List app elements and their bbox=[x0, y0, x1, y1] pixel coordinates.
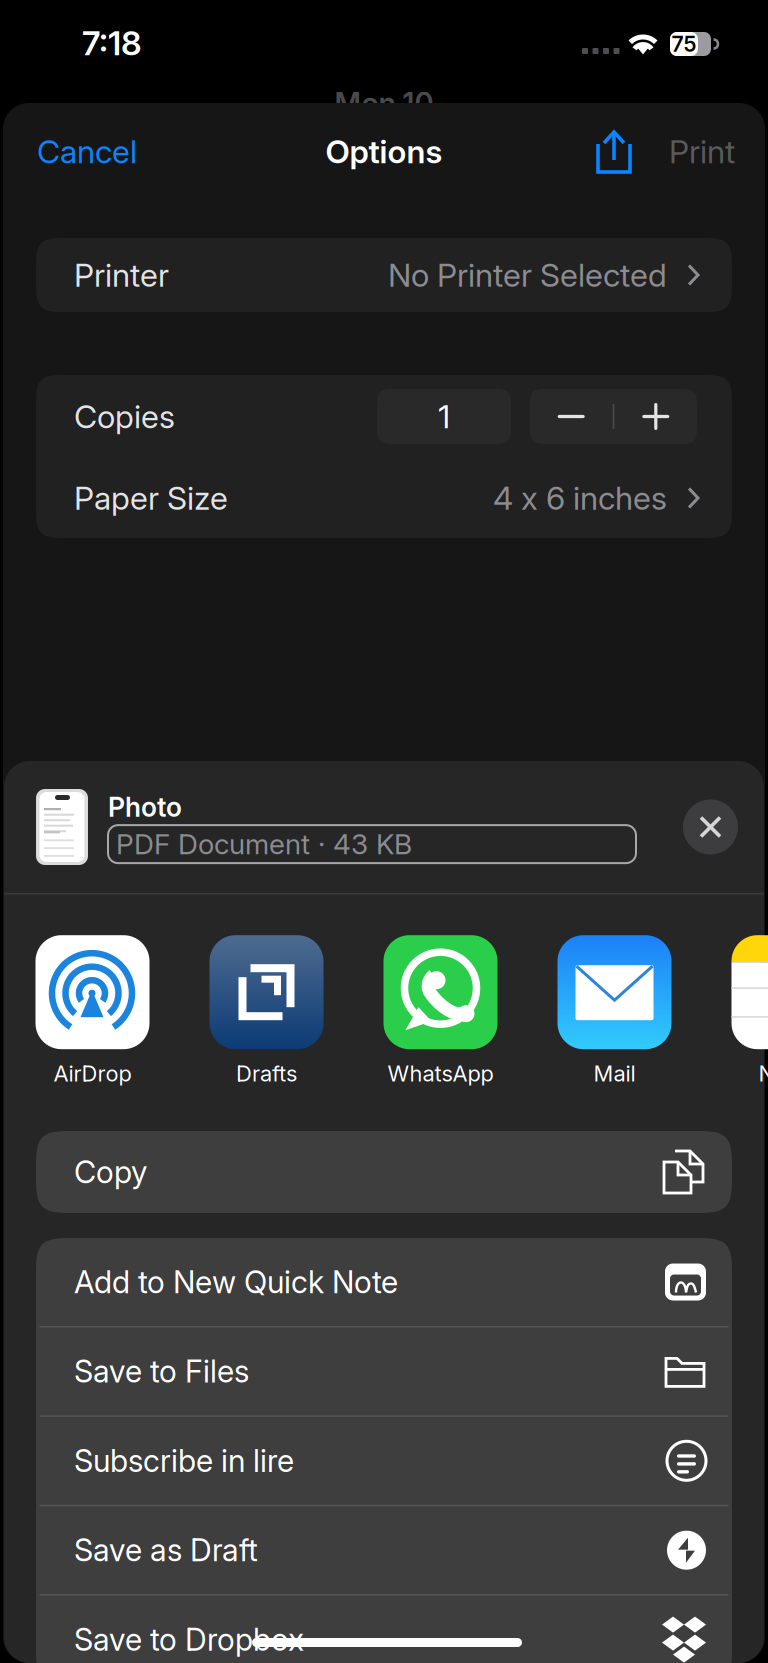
button[interactable]: Copy bbox=[36, 1128, 732, 1216]
button[interactable]: AirDrop bbox=[5, 931, 179, 1091]
button[interactable]: Save to Files bbox=[36, 1327, 732, 1415]
staticText: Cancel bbox=[37, 132, 137, 171]
staticText: Mail bbox=[593, 1060, 635, 1087]
button[interactable]: Printer bbox=[36, 238, 732, 312]
staticText: AirDrop bbox=[53, 1060, 131, 1087]
staticText: 4 ​x​ 6 inches bbox=[493, 479, 667, 517]
button[interactable]: Paper Size bbox=[36, 458, 732, 538]
staticText: 1 bbox=[438, 397, 450, 436]
button[interactable]: Save to Dropbox bbox=[36, 1596, 732, 1663]
button[interactable]: Increase copies bbox=[614, 389, 697, 444]
button[interactable]: WhatsApp bbox=[353, 931, 527, 1091]
staticText: No Printer Selected bbox=[388, 256, 667, 294]
staticText: Add to New Quick Note bbox=[74, 1263, 398, 1300]
button[interactable]: Share bbox=[596, 129, 632, 174]
staticText: Paper Size bbox=[74, 479, 228, 517]
button[interactable]: Save as Draft bbox=[36, 1506, 732, 1594]
staticText: Subscribe in lire bbox=[74, 1442, 294, 1479]
staticText: WhatsApp bbox=[387, 1060, 493, 1087]
staticText: Save to Dropbox bbox=[74, 1621, 304, 1658]
button[interactable]: Decrease copies bbox=[530, 389, 613, 444]
staticText: Save to Files bbox=[74, 1353, 249, 1390]
staticText: Drafts bbox=[236, 1060, 297, 1087]
staticText: Copy bbox=[74, 1153, 147, 1190]
staticText: PDF Document · 43 KB bbox=[116, 827, 412, 861]
staticText: Print bbox=[669, 132, 735, 171]
staticText: 7:18 bbox=[82, 23, 142, 63]
button[interactable]: Add to New Quick Note bbox=[36, 1238, 732, 1326]
button[interactable]: Notes bbox=[701, 931, 768, 1091]
button[interactable]: Subscribe in lire bbox=[36, 1417, 732, 1505]
staticText: Printer bbox=[74, 256, 169, 294]
staticText: Options bbox=[325, 132, 442, 171]
button[interactable]: Mail bbox=[527, 931, 701, 1091]
staticText: Notes bbox=[758, 1060, 768, 1087]
staticText: Photo bbox=[108, 791, 182, 823]
button[interactable]: Print bbox=[669, 120, 735, 183]
button[interactable]: Drafts bbox=[179, 931, 353, 1091]
staticText: Mon 10 bbox=[334, 85, 433, 121]
staticText: Copies bbox=[74, 397, 175, 436]
button[interactable]: Cancel bbox=[37, 120, 137, 183]
staticText: Save as Draft bbox=[74, 1532, 258, 1569]
button[interactable]: Remove attachment bbox=[683, 799, 738, 854]
staticText: 75 bbox=[671, 31, 696, 57]
